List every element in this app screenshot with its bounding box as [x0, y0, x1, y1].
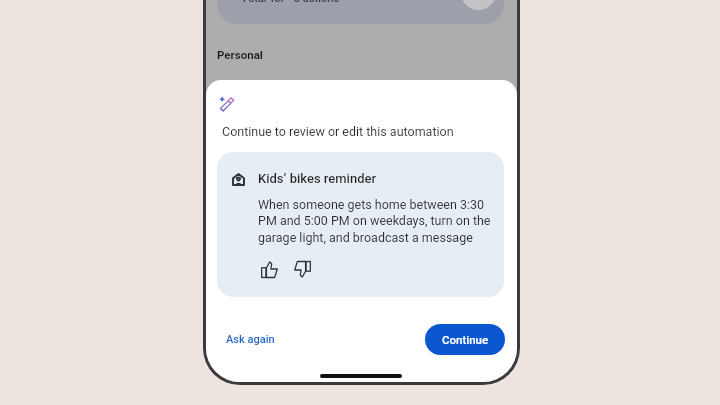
button[interactable]: Ask again: [220, 323, 281, 355]
button[interactable]: Kids’ bikes reminder: [217, 152, 504, 297]
button[interactable]: Good suggestion: [261, 261, 278, 278]
staticText: Ask again: [226, 333, 275, 346]
staticText: When someone gets home between 3:30 PM a…: [258, 197, 491, 245]
staticText: Continue: [442, 333, 489, 346]
staticText: Kids’ bikes reminder: [258, 171, 377, 186]
button[interactable]: Bad suggestion: [294, 261, 311, 278]
staticText: Continue to review or edit this automati…: [222, 124, 454, 139]
staticText: Personal: [217, 48, 263, 61]
button[interactable]: Continue: [425, 324, 505, 355]
staticText: l star for • 3 actions: [243, 0, 340, 5]
